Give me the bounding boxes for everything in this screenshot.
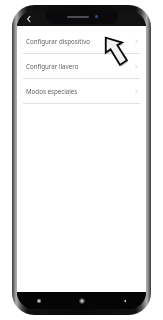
button[interactable]: Configurar dispositivo xyxy=(17,29,146,54)
staticText: Configurar llavero xyxy=(26,62,134,70)
staticText: Modos especiales xyxy=(26,87,134,95)
button[interactable]: Configurar llavero xyxy=(17,54,146,79)
button[interactable]: Home xyxy=(60,292,103,309)
button[interactable]: Back xyxy=(22,12,36,26)
button[interactable]: Recents xyxy=(17,292,60,309)
staticText: Configurar dispositivo xyxy=(26,37,134,45)
button[interactable]: Modos especiales xyxy=(17,79,146,104)
button[interactable]: Back xyxy=(103,292,146,309)
